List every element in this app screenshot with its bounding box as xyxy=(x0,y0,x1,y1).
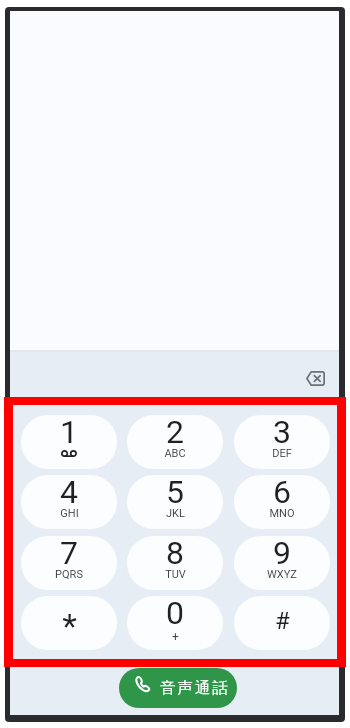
staticText: JKL xyxy=(166,507,185,520)
button[interactable]: 7 xyxy=(21,536,117,590)
button[interactable]: 1 xyxy=(21,415,117,469)
staticText: 5 xyxy=(166,475,184,511)
staticText: 7 xyxy=(60,536,78,572)
staticText: # xyxy=(275,607,290,635)
staticText: 音声通話 xyxy=(159,678,229,698)
staticText: PQRS xyxy=(55,568,83,581)
staticText: * xyxy=(62,606,77,646)
staticText: 3 xyxy=(273,415,291,451)
staticText: 0 xyxy=(166,596,184,632)
button[interactable]: # xyxy=(234,596,330,650)
staticText: + xyxy=(172,630,179,644)
staticText: 8 xyxy=(166,536,184,572)
staticText: 1 xyxy=(60,415,78,451)
staticText: 4 xyxy=(60,475,78,511)
button[interactable]: * xyxy=(21,596,117,650)
staticText: 9 xyxy=(273,536,291,572)
staticText: TUV xyxy=(165,568,186,581)
button[interactable] xyxy=(304,369,328,389)
button[interactable]: 2 xyxy=(127,415,223,469)
button[interactable]: 6 xyxy=(234,475,330,529)
button[interactable]: 4 xyxy=(21,475,117,529)
staticText: ABC xyxy=(164,447,186,460)
button[interactable]: 9 xyxy=(234,536,330,590)
staticText: 2 xyxy=(166,415,184,451)
staticText: 6 xyxy=(273,475,291,511)
button[interactable]: 5 xyxy=(127,475,223,529)
staticText: WXYZ xyxy=(267,568,297,581)
button[interactable]: 0 xyxy=(127,596,223,650)
button[interactable]: 3 xyxy=(234,415,330,469)
staticText: DEF xyxy=(272,447,292,460)
staticText: GHI xyxy=(60,507,79,520)
button[interactable]: 音声通話 xyxy=(119,668,237,708)
staticText: MNO xyxy=(269,507,295,520)
button[interactable]: 8 xyxy=(127,536,223,590)
